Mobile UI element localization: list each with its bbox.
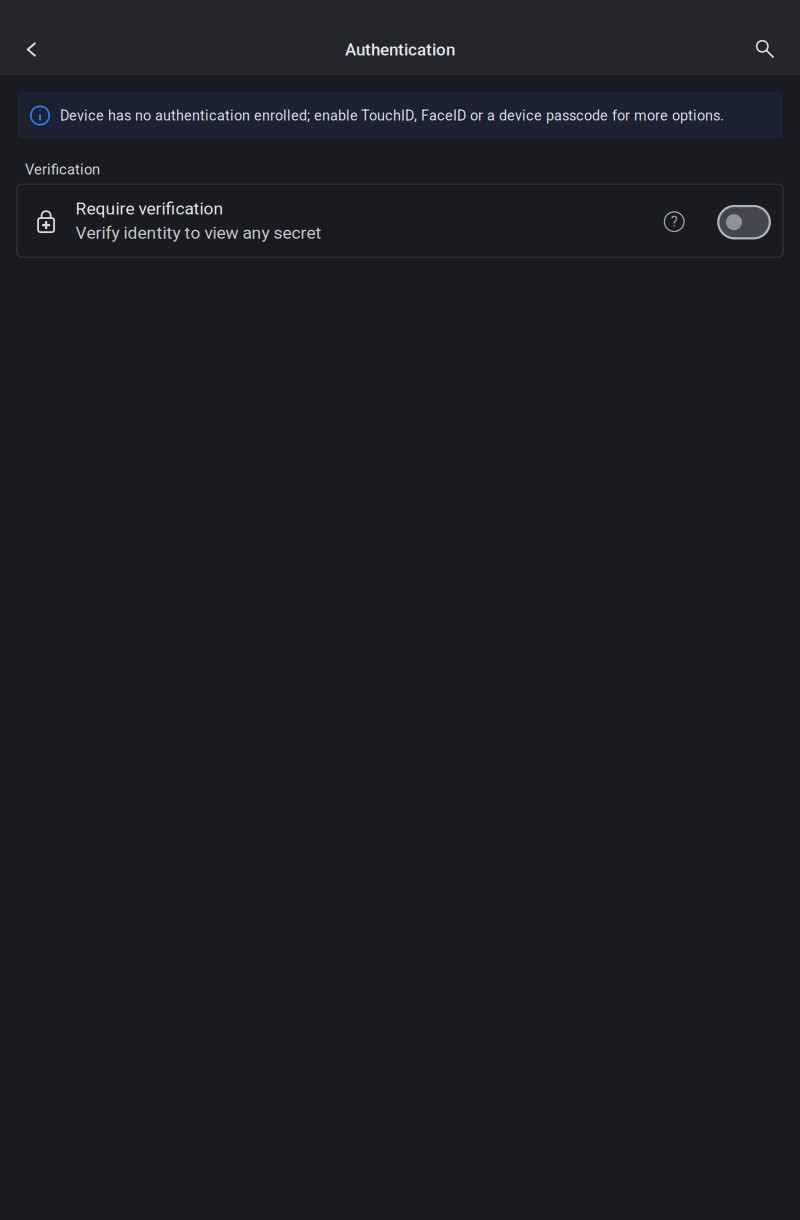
staticText: ? — [671, 213, 678, 230]
staticText: Verification — [25, 161, 100, 178]
staticText: Authentication — [345, 39, 455, 60]
staticText: Verify identity to view any secret — [75, 223, 321, 243]
button[interactable]: Search — [741, 24, 789, 75]
button[interactable]: Help about require verification — [664, 209, 718, 232]
button[interactable]: Require verification — [17, 184, 664, 257]
staticText: Require verification — [75, 198, 223, 219]
button[interactable]: Require verification, off — [718, 203, 783, 238]
staticText: Device has no authentication enrolled; e… — [60, 107, 724, 124]
button[interactable]: Back — [8, 24, 56, 75]
